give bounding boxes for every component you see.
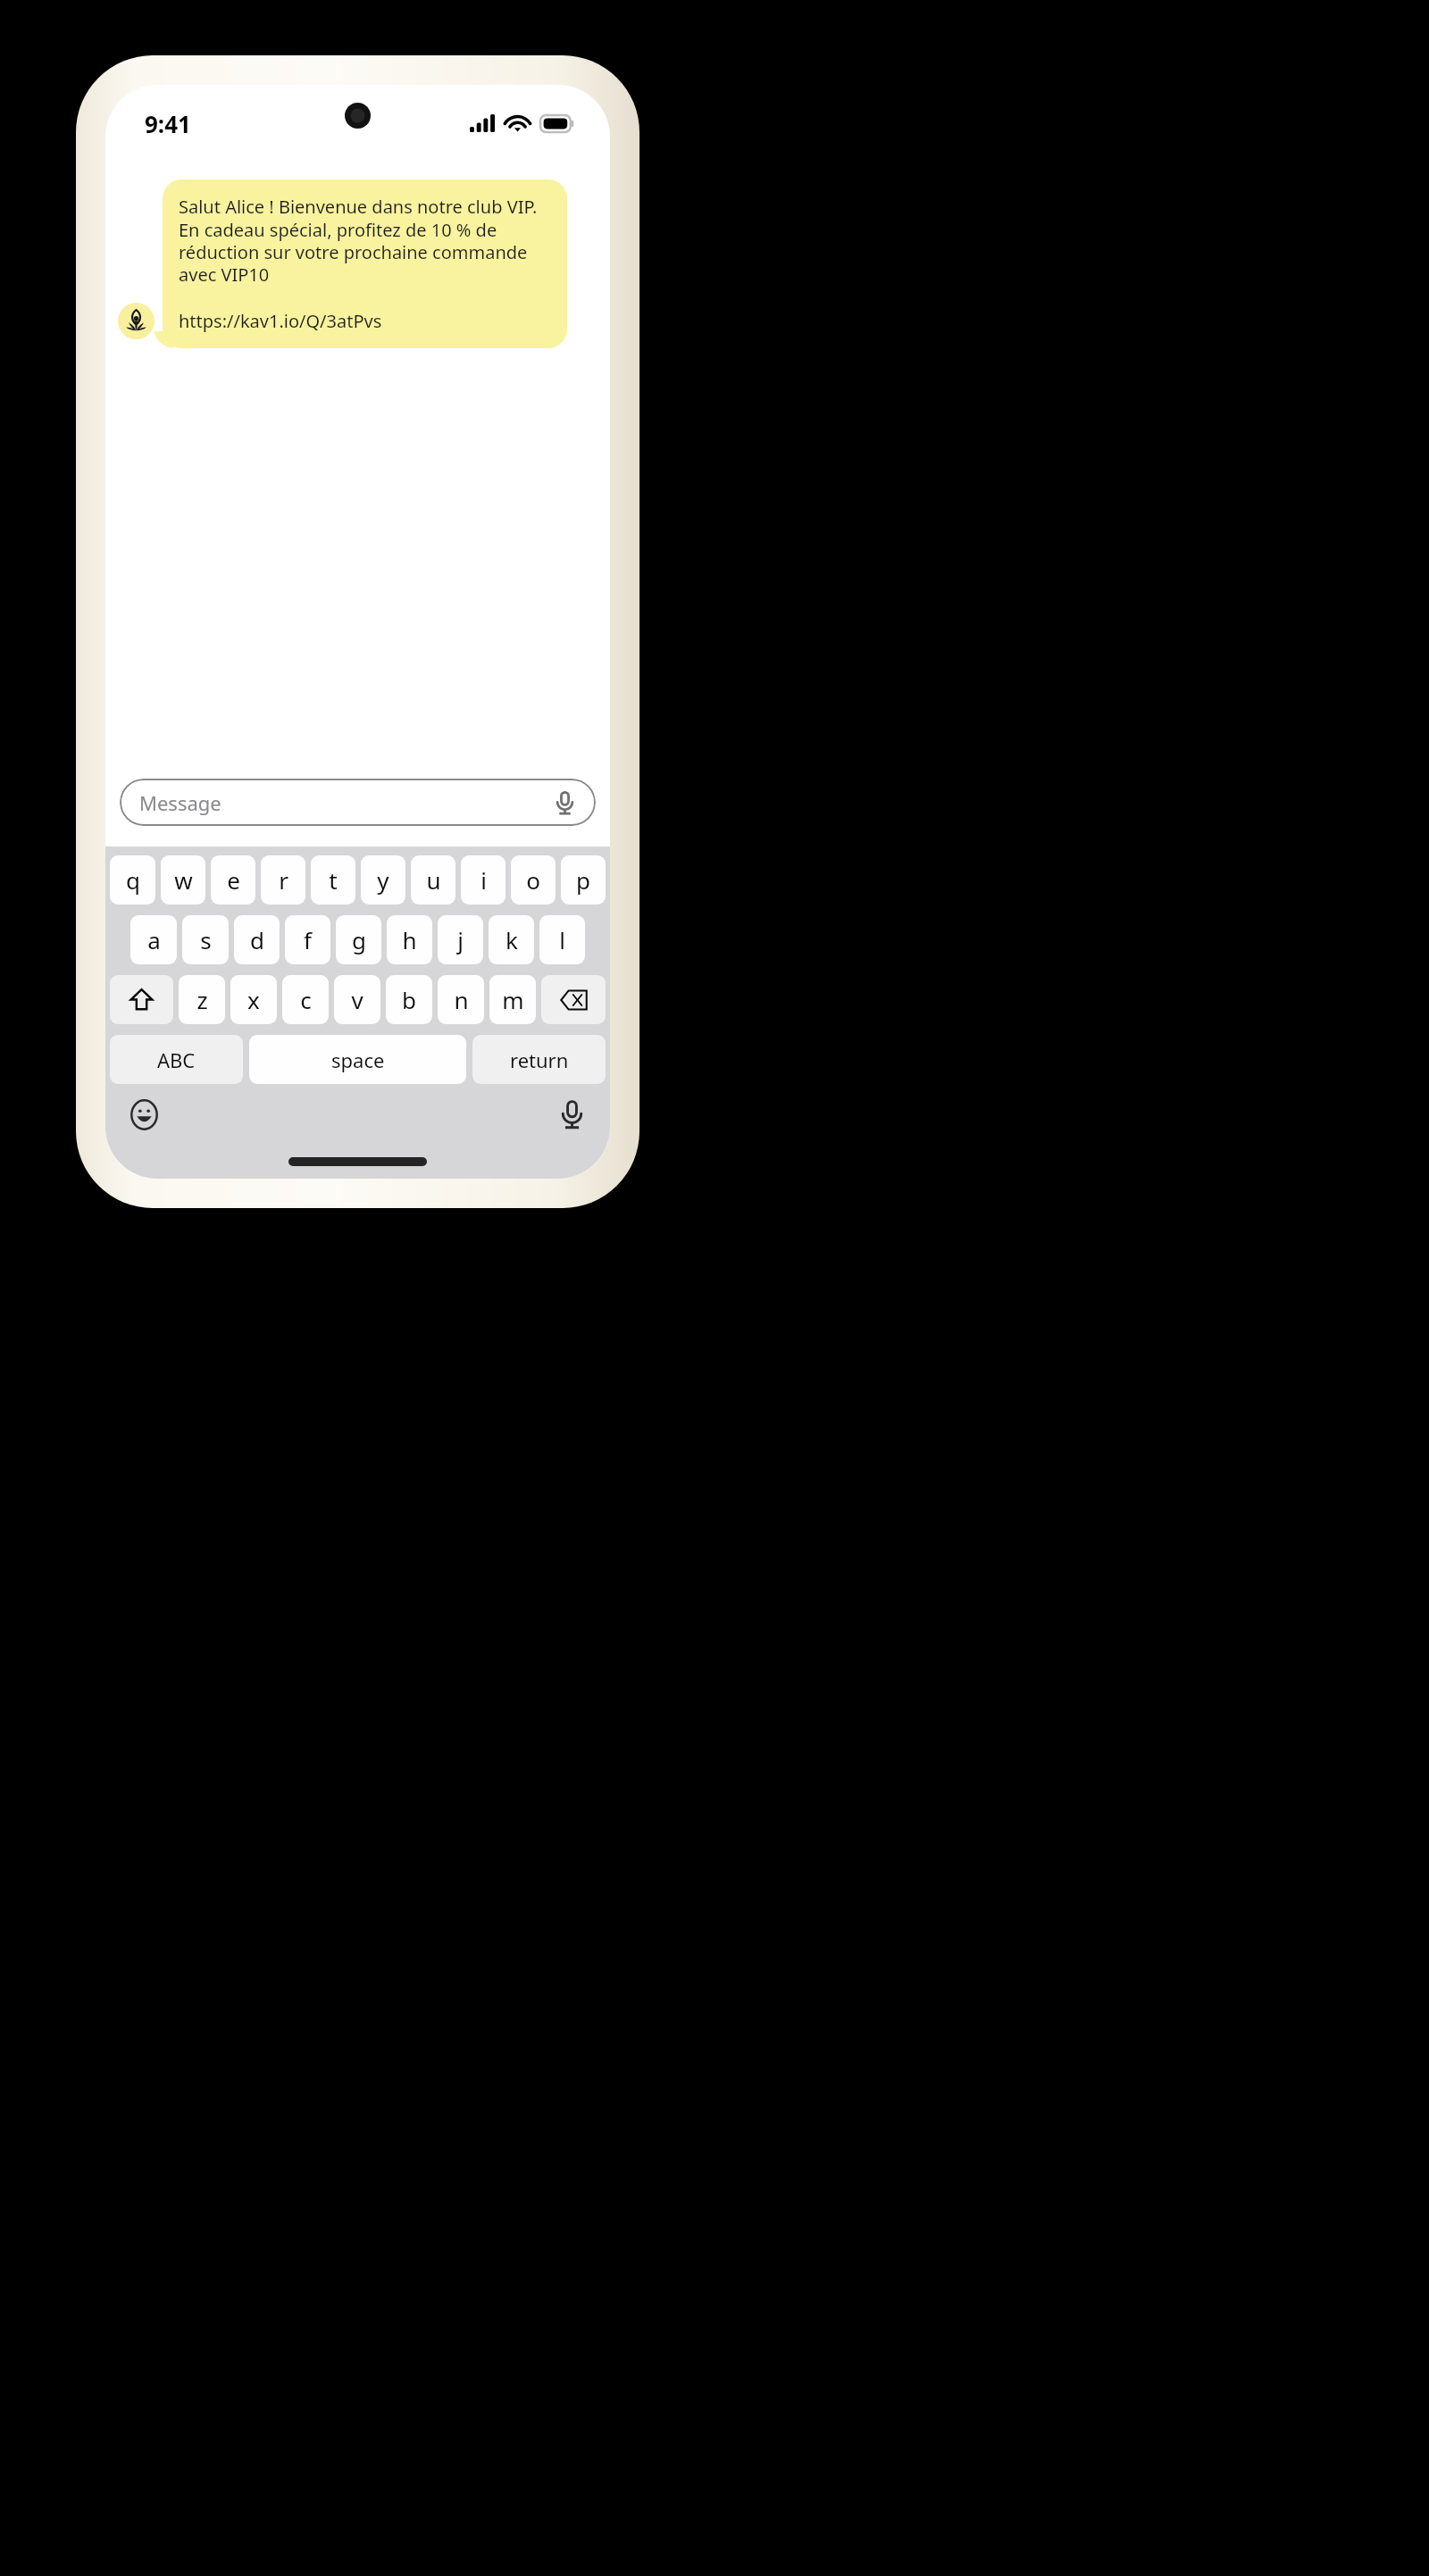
staticText: s	[200, 924, 212, 955]
button[interactable]: p	[561, 855, 606, 905]
staticText: 9:41	[145, 108, 191, 139]
button[interactable]: g	[336, 915, 381, 964]
staticText: space	[331, 1046, 385, 1073]
button[interactable]: b	[386, 975, 432, 1024]
staticText: o	[526, 864, 540, 896]
staticText: t	[329, 864, 338, 896]
button[interactable]: l	[539, 915, 585, 964]
button[interactable]: s	[182, 915, 229, 964]
staticText: y	[377, 864, 389, 896]
staticText: j	[457, 924, 464, 955]
button[interactable]: w	[161, 855, 205, 905]
button[interactable]: Message	[120, 779, 596, 826]
button[interactable]: return	[472, 1035, 606, 1084]
staticText: p	[576, 864, 590, 896]
staticText: u	[426, 864, 441, 896]
button[interactable]: Contact avatar	[118, 303, 155, 339]
staticText: ABC	[157, 1046, 196, 1073]
button[interactable]: n	[438, 975, 484, 1024]
button[interactable]: u	[411, 855, 455, 905]
staticText: https://kav1.io/Q/3atPvs	[179, 309, 382, 333]
staticText: return	[510, 1046, 569, 1073]
button[interactable]: Voice input	[551, 789, 578, 816]
staticText: Message	[139, 789, 551, 816]
button[interactable]: t	[311, 855, 355, 905]
button[interactable]: v	[334, 975, 380, 1024]
button[interactable]: f	[285, 915, 330, 964]
staticText: w	[174, 864, 193, 896]
button[interactable]: ABC	[110, 1035, 243, 1084]
button[interactable]: r	[261, 855, 305, 905]
button[interactable]: d	[234, 915, 280, 964]
staticText: a	[147, 924, 161, 955]
staticText: Salut Alice ! Bienvenue dans notre club …	[179, 195, 551, 286]
button[interactable]: Shift	[110, 975, 173, 1024]
button[interactable]: q	[110, 855, 155, 905]
button[interactable]: h	[387, 915, 432, 964]
staticText: v	[351, 984, 364, 1015]
staticText: m	[502, 984, 524, 1015]
staticText: h	[402, 924, 417, 955]
button[interactable]: Salut Alice ! Bienvenue dans notre club …	[163, 179, 567, 348]
staticText: q	[126, 864, 140, 896]
button[interactable]: k	[489, 915, 534, 964]
button[interactable]: Backspace	[541, 975, 606, 1024]
staticText: b	[402, 984, 416, 1015]
button[interactable]: m	[489, 975, 536, 1024]
staticText: x	[247, 984, 260, 1015]
button[interactable]: Emoji	[125, 1096, 163, 1133]
staticText: i	[481, 864, 487, 896]
staticText: n	[454, 984, 469, 1015]
staticText: k	[506, 924, 518, 955]
button[interactable]: a	[130, 915, 177, 964]
button[interactable]: i	[461, 855, 506, 905]
button[interactable]: e	[211, 855, 255, 905]
button[interactable]: space	[249, 1035, 466, 1084]
button[interactable]: o	[511, 855, 556, 905]
staticText: f	[304, 924, 312, 955]
button[interactable]: j	[438, 915, 483, 964]
staticText: r	[279, 864, 288, 896]
button[interactable]: z	[179, 975, 225, 1024]
staticText: g	[352, 924, 366, 955]
button[interactable]: Voice typing	[553, 1096, 590, 1133]
button[interactable]: c	[282, 975, 329, 1024]
button[interactable]: x	[230, 975, 277, 1024]
button[interactable]: y	[361, 855, 405, 905]
staticText: d	[250, 924, 264, 955]
staticText: c	[300, 984, 312, 1015]
staticText: z	[196, 984, 208, 1015]
staticText: l	[559, 924, 565, 955]
staticText: e	[227, 864, 240, 896]
